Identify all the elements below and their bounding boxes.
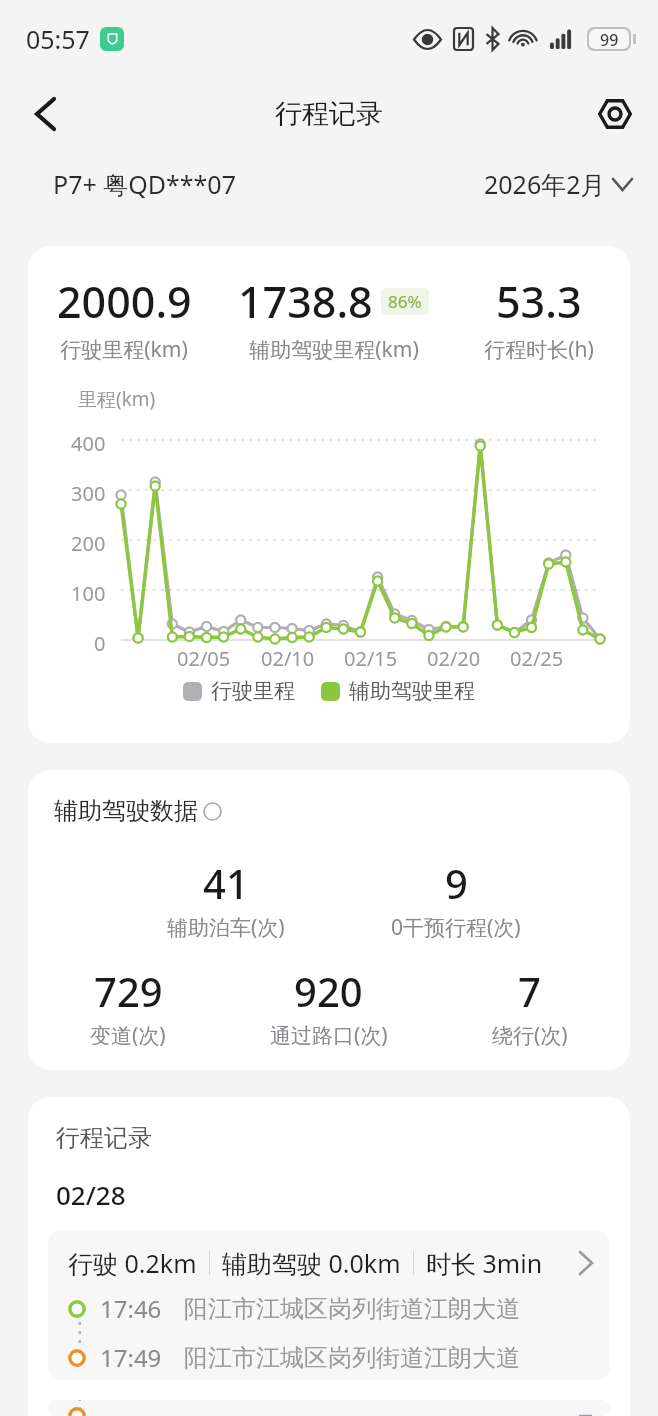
staticText: 920 <box>294 964 363 1018</box>
staticText: 辅助驾驶里程 <box>349 678 475 704</box>
staticText: 通过路口(次) <box>270 1021 388 1050</box>
staticText: 53.3 <box>496 272 582 331</box>
button[interactable]: 行驶 0.2km <box>48 1230 610 1380</box>
staticText: 行驶里程(km) <box>60 335 188 364</box>
staticText: 辅助泊车(次) <box>167 913 285 942</box>
staticText: 0干预行程(次) <box>391 913 521 942</box>
staticText: 1738.8 <box>238 272 373 331</box>
staticText: 02/05 <box>177 645 231 672</box>
staticText: 05:57 <box>26 22 90 56</box>
staticText: 行驶 0.2km <box>68 1246 197 1280</box>
staticText: 时长 3min <box>426 1246 543 1280</box>
staticText: 9 <box>445 856 468 910</box>
button[interactable]: 辅助驾驶数据 <box>54 796 222 826</box>
staticText: 阳江市江城区岗列街道江朗大道 <box>184 1294 520 1324</box>
staticText: 里程(km) <box>78 386 156 412</box>
staticText: 02/20 <box>427 645 481 672</box>
staticText: 02/15 <box>344 645 398 672</box>
staticText: 绕行(次) <box>492 1021 568 1050</box>
staticText: 2000.9 <box>57 272 192 331</box>
staticText: 辅助驾驶 0.0km <box>222 1246 401 1280</box>
staticText: 行驶里程 <box>211 678 295 704</box>
staticText: 99 <box>600 29 619 49</box>
button[interactable]: 2026年2月 <box>484 167 632 201</box>
staticText: 17:46 <box>100 1292 162 1325</box>
button[interactable]: Settings <box>588 87 642 141</box>
staticText: 行程记录 <box>275 97 383 131</box>
staticText: P7+ 粤QD***07 <box>53 167 236 201</box>
staticText: 0 <box>94 630 106 657</box>
staticText: 02/25 <box>510 645 564 672</box>
staticText: 100 <box>71 580 106 607</box>
staticText: 2026年2月 <box>484 167 606 201</box>
button[interactable]: 行驶 0.2km <box>48 1400 610 1416</box>
staticText: 300 <box>71 480 106 507</box>
staticText: 02/28 <box>56 1177 126 1212</box>
staticText: 辅助驾驶里程(km) <box>249 335 419 364</box>
button[interactable]: Back <box>18 87 72 141</box>
staticText: 200 <box>71 530 106 557</box>
staticText: 17:49 <box>100 1341 162 1374</box>
staticText: 400 <box>71 430 106 457</box>
staticText: 变道(次) <box>90 1021 166 1050</box>
staticText: 辅助驾驶数据 <box>54 796 198 826</box>
staticText: 阳江市江城区岗列街道江朗大道 <box>184 1343 520 1373</box>
staticText: 7 <box>518 964 541 1018</box>
staticText: 86% <box>388 290 422 313</box>
staticText: 729 <box>94 964 163 1018</box>
staticText: 行程记录 <box>56 1123 152 1153</box>
staticText: 行程时长(h) <box>484 335 594 364</box>
staticText: 41 <box>203 856 249 910</box>
staticText: 02/10 <box>261 645 315 672</box>
